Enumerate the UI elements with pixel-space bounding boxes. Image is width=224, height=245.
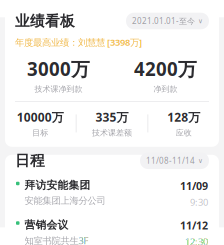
staticText: 安能集团上海分公司 [24, 195, 105, 206]
staticText: 日程 [15, 152, 45, 170]
button[interactable]: 拜访安能集团 [5, 179, 219, 208]
staticText: 目标 [32, 128, 48, 138]
staticText: 应收 [176, 128, 192, 138]
staticText: 3000万 [27, 56, 90, 81]
staticText: 11/09 [180, 179, 208, 193]
staticText: 335万 [95, 109, 128, 125]
staticText: 年度最高业绩：刘慧慧 [3398万] [15, 36, 142, 48]
staticText: 10000万 [17, 109, 64, 125]
button[interactable]: 营销会议 [5, 218, 219, 245]
staticText: ∨ [198, 157, 203, 164]
staticText: 业绩看板 [15, 12, 75, 30]
staticText: 128万 [167, 109, 200, 125]
button[interactable]: 2021.01.01-至今 [126, 13, 209, 29]
button[interactable]: 11/08-11/14 [140, 152, 209, 169]
staticText: 拜访安能集团 [24, 179, 90, 192]
staticText: 4200万 [134, 56, 197, 81]
staticText: 技术课净到款 [34, 84, 82, 94]
staticText: 知室书院共生3F [24, 234, 88, 245]
staticText: 11/08-11/14 [146, 155, 195, 166]
staticText: 营销会议 [24, 218, 68, 231]
staticText: 净到款 [153, 84, 177, 94]
staticText: 11/12 [180, 218, 208, 232]
staticText: 9:30 [190, 196, 208, 208]
staticText: 12:30 [185, 235, 208, 245]
staticText: 技术课差额 [92, 128, 132, 138]
staticText: 2021.01.01-至今 [132, 16, 195, 26]
staticText: ∨ [198, 17, 203, 25]
